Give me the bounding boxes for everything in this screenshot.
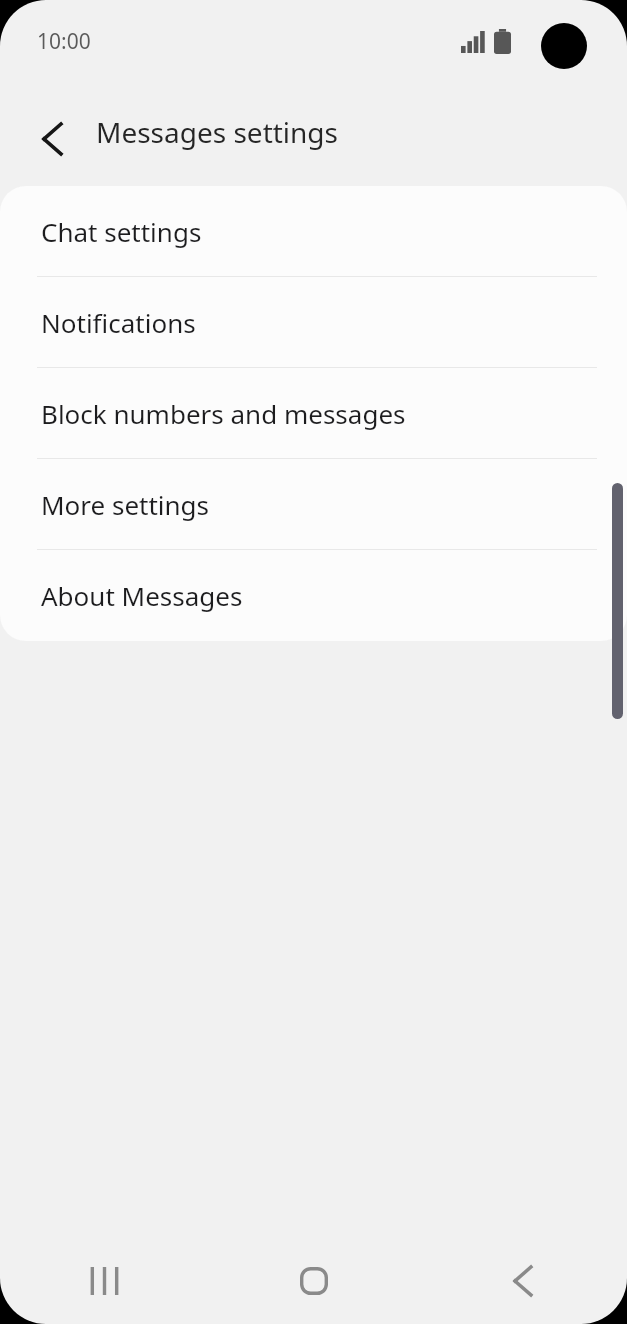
staticText: Messages settings	[96, 113, 339, 151]
button[interactable]: Back	[26, 113, 78, 165]
button[interactable]: Home	[209, 1238, 418, 1324]
button[interactable]: About Messages	[0, 550, 627, 641]
staticText: Chat settings	[41, 214, 202, 249]
button[interactable]: More settings	[0, 459, 627, 550]
button[interactable]: Chat settings	[0, 186, 627, 277]
staticText: About Messages	[41, 578, 243, 613]
button[interactable]: Back	[418, 1238, 627, 1324]
staticText: More settings	[41, 487, 210, 522]
button[interactable]: Block numbers and messages	[0, 368, 627, 459]
staticText: 10:00	[37, 27, 91, 56]
button[interactable]: Recent apps	[0, 1238, 209, 1324]
staticText: Block numbers and messages	[41, 396, 406, 431]
button[interactable]: Notifications	[0, 277, 627, 368]
staticText: Notifications	[41, 305, 196, 340]
